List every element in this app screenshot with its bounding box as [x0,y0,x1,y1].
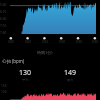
staticText: 0:00 [59,40,65,44]
staticText: 100 [1,90,7,94]
staticText: 7:40 [0,31,7,35]
staticText: 心拍 (bpm) [2,58,25,64]
staticText: 149 [64,68,77,78]
staticText: 6:40 [0,17,7,21]
staticText: 最大 [67,78,74,82]
staticText: 0:00 [92,40,98,44]
staticText: 平均 [22,78,29,82]
staticText: 0:00 [42,40,48,44]
staticText: 0:00 [25,40,31,44]
staticText: 0:00 [76,40,82,44]
staticText: 5:40 [0,3,7,7]
staticText: 6:10 [0,10,7,14]
staticText: 130 [19,68,32,78]
staticText: 時間 (分) [37,50,53,55]
staticText: 7:10 [0,24,7,28]
staticText: 150 [1,84,7,88]
staticText: 0:00 [8,40,14,44]
